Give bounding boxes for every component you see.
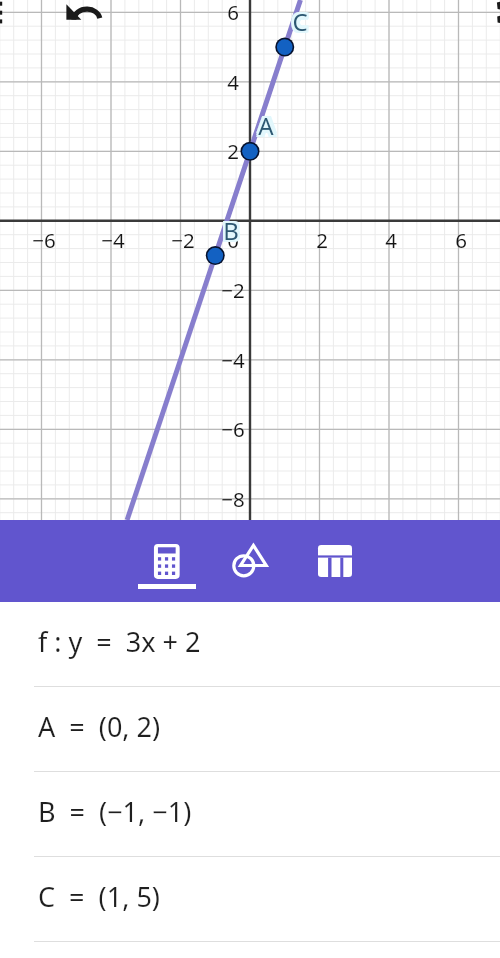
- button[interactable]: Undo: [66, 4, 100, 20]
- staticText: A: [258, 109, 275, 142]
- staticText: B: [221, 212, 237, 245]
- staticText: B: [223, 212, 239, 245]
- staticText: 6: [455, 226, 467, 254]
- staticText: 2: [316, 226, 328, 254]
- staticText: B: [225, 212, 241, 245]
- button[interactable]: f : y = 3x + 2: [0, 602, 500, 687]
- staticText: C: [294, 5, 310, 38]
- button[interactable]: B = (−1, −1): [0, 772, 500, 857]
- staticText: A = (0, 2): [38, 708, 161, 745]
- staticText: −2: [221, 276, 245, 304]
- staticText: A: [256, 109, 273, 142]
- staticText: 0: [227, 226, 239, 254]
- staticText: 4: [385, 226, 397, 254]
- staticText: B: [223, 214, 239, 247]
- staticText: A: [260, 107, 277, 140]
- staticText: B = (−1, −1): [38, 793, 192, 830]
- button[interactable]: Geometry: [208, 520, 292, 602]
- staticText: C: [292, 7, 308, 40]
- staticText: −4: [221, 346, 245, 374]
- staticText: −8: [221, 485, 245, 513]
- staticText: C: [290, 7, 306, 40]
- staticText: B: [221, 214, 237, 247]
- staticText: A: [258, 107, 275, 140]
- button[interactable]: Redo: [494, 0, 500, 26]
- staticText: A: [256, 111, 273, 144]
- staticText: −4: [101, 226, 125, 254]
- staticText: B: [225, 214, 241, 247]
- staticText: B: [223, 216, 239, 249]
- staticText: B: [223, 214, 239, 247]
- staticText: A: [256, 107, 273, 140]
- staticText: C: [290, 3, 306, 36]
- staticText: C: [294, 3, 310, 36]
- staticText: C: [294, 7, 310, 40]
- staticText: −6: [32, 226, 56, 254]
- staticText: A: [258, 111, 275, 144]
- staticText: C: [292, 3, 308, 36]
- button[interactable]: A = (0, 2): [0, 687, 500, 772]
- staticText: C: [292, 5, 308, 38]
- button[interactable]: C = (1, 5): [0, 857, 500, 942]
- staticText: A: [260, 109, 277, 142]
- staticText: B: [225, 216, 241, 249]
- staticText: −6: [221, 415, 245, 443]
- staticText: −2: [171, 226, 195, 254]
- staticText: 2: [227, 137, 239, 165]
- button[interactable]: Menu: [0, 0, 4, 26]
- staticText: 6: [227, 0, 239, 26]
- staticText: B: [221, 216, 237, 249]
- staticText: f : y = 3x + 2: [38, 623, 201, 660]
- staticText: C: [292, 5, 308, 38]
- button[interactable]: Table: [293, 520, 377, 602]
- staticText: C = (1, 5): [38, 878, 160, 915]
- staticText: C: [290, 5, 306, 38]
- button[interactable]: Calculator: [125, 520, 209, 602]
- staticText: 4: [227, 68, 239, 96]
- staticText: A: [260, 111, 277, 144]
- staticText: A: [258, 109, 274, 142]
